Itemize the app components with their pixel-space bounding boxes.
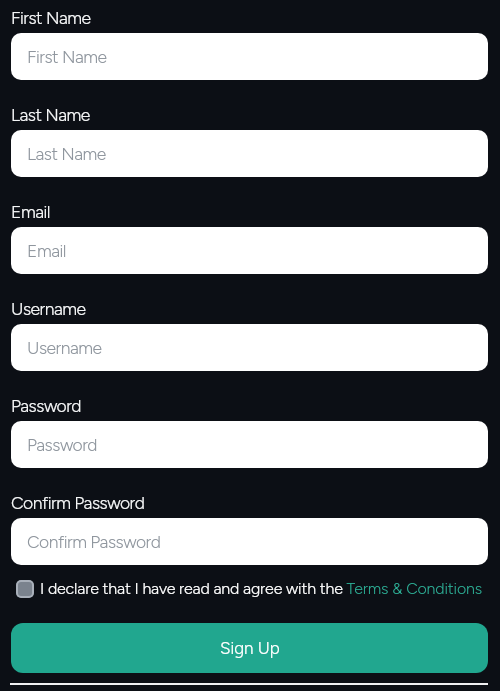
staticText: Password: [11, 395, 82, 414]
staticText: Last Name: [27, 143, 106, 164]
staticText: Confirm Password: [27, 531, 161, 552]
staticText: I declare that I have read and agree wit…: [40, 579, 483, 598]
staticText: Confirm Password: [11, 492, 145, 511]
staticText: First Name: [11, 7, 91, 26]
staticText: Last Name: [11, 104, 90, 123]
staticText: Email: [27, 240, 66, 261]
button[interactable]: Password: [11, 421, 488, 468]
button[interactable]: Username: [11, 324, 488, 371]
button[interactable]: Confirm Password: [11, 518, 488, 565]
staticText: Username: [11, 298, 86, 317]
staticText: Username: [27, 337, 102, 358]
staticText: Sign Up: [220, 638, 280, 658]
staticText: First Name: [27, 46, 107, 67]
button[interactable]: First Name: [11, 33, 488, 80]
button[interactable]: Last Name: [11, 130, 488, 177]
button[interactable]: Sign Up: [11, 623, 488, 673]
button[interactable]: Email: [11, 227, 488, 274]
staticText: Password: [27, 434, 98, 455]
staticText: Email: [11, 201, 50, 220]
button[interactable]: I declare that I have read and agree wit…: [16, 579, 483, 598]
